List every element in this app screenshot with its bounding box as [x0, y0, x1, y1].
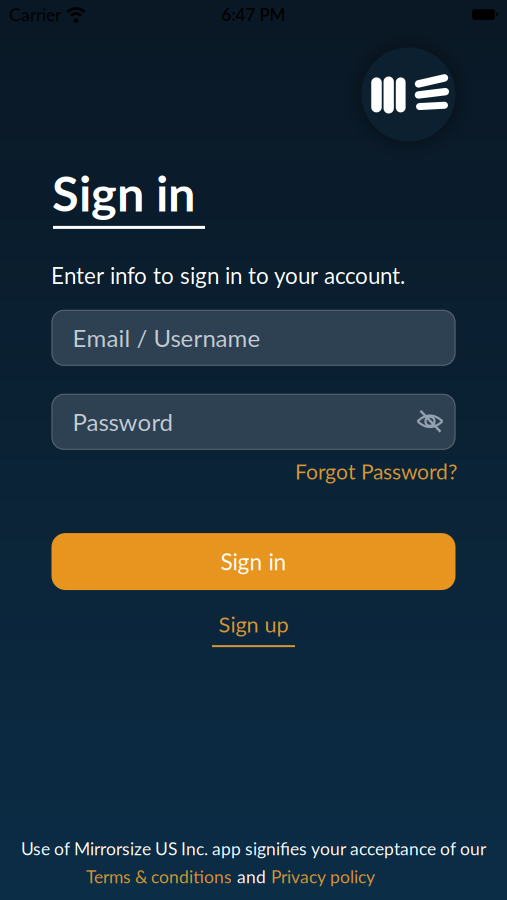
staticText: Email / Username [72, 323, 260, 352]
button[interactable]: Email / Username [51, 310, 455, 366]
button[interactable]: Password [51, 394, 455, 450]
button[interactable]: Terms & conditions [86, 866, 232, 887]
staticText: Terms & conditions [86, 866, 232, 887]
staticText: Use of Mirrorsize US Inc. app signifies … [21, 838, 486, 859]
button[interactable]: Forgot Password? [295, 459, 457, 484]
staticText: Sign in [220, 548, 286, 575]
staticText: Carrier [9, 4, 61, 25]
staticText: and [237, 866, 266, 887]
staticText: Forgot Password? [295, 459, 457, 484]
button[interactable]: Sign in [51, 533, 455, 590]
staticText: Sign in [52, 163, 195, 222]
button[interactable]: Sign up [212, 611, 295, 647]
staticText: Enter info to sign in to your account. [51, 262, 405, 289]
staticText: Sign up [218, 611, 288, 637]
staticText: Privacy policy [271, 866, 375, 887]
button[interactable]: Show password [416, 412, 444, 432]
staticText: 6:47 PM [221, 4, 285, 25]
button[interactable]: Privacy policy [271, 866, 375, 887]
staticText: Password [72, 407, 172, 436]
